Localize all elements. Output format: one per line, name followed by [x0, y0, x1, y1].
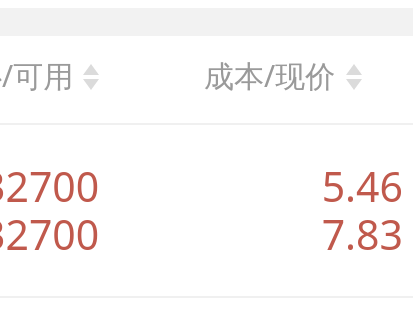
button[interactable]: 心/可用	[0, 54, 165, 97]
other: Holdings table	[0, 0, 413, 320]
button[interactable]: 成本/现价	[194, 54, 413, 97]
staticText: 成本/现价	[204, 55, 336, 96]
staticText: 心/可用	[0, 55, 74, 96]
staticText: 32700	[0, 158, 100, 204]
staticText: 5.46	[194, 158, 403, 204]
staticText: 32700	[0, 206, 100, 252]
button[interactable]: 32700	[0, 158, 413, 204]
button[interactable]: 32700	[0, 206, 413, 252]
staticText: 7.83	[194, 206, 403, 252]
